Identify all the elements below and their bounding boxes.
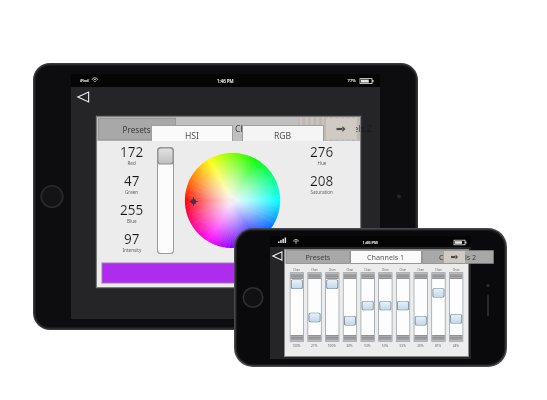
button[interactable]: Presets tab xyxy=(0,0,547,400)
